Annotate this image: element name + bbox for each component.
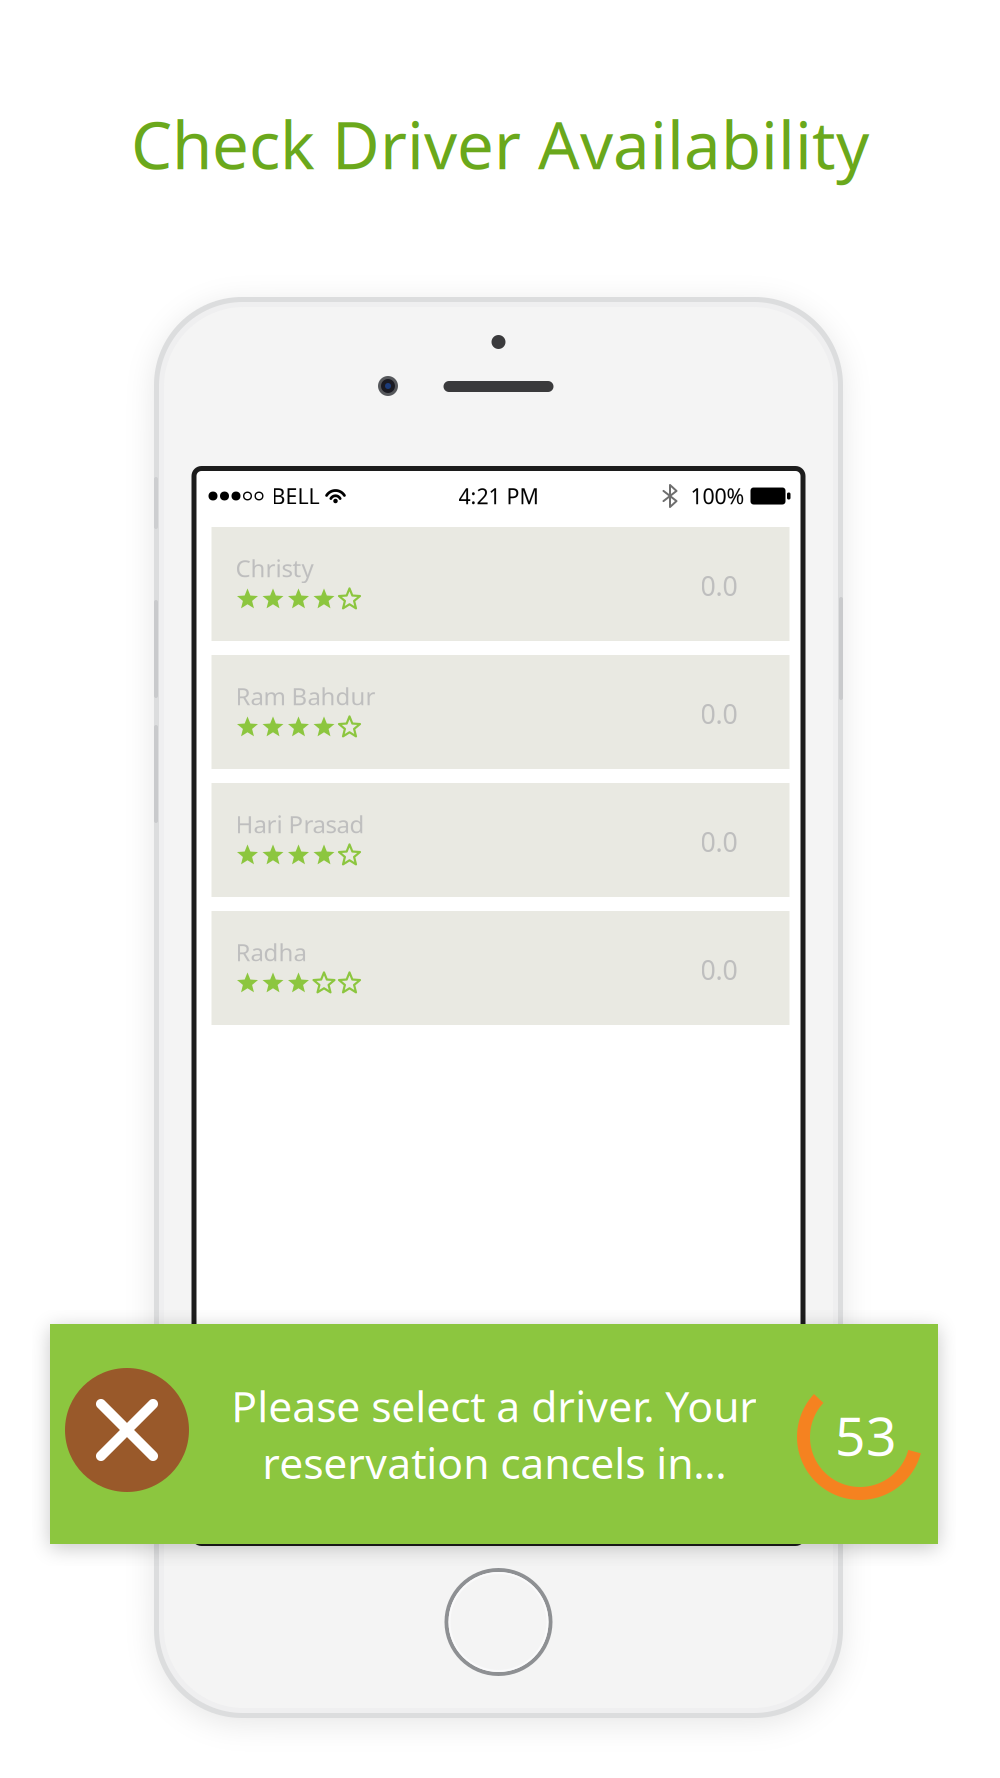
staticText: 0.0 xyxy=(700,568,737,603)
button[interactable]: Hari Prasad xyxy=(209,783,787,897)
staticText: Ram Bahdur xyxy=(235,680,375,712)
staticText: BELL xyxy=(271,482,319,510)
staticText: 0.0 xyxy=(700,696,737,731)
button[interactable]: Ram Bahdur xyxy=(209,655,787,769)
button[interactable]: Dismiss xyxy=(65,1368,189,1492)
staticText: Radha xyxy=(235,936,306,968)
staticText: 53 xyxy=(835,1400,897,1470)
staticText: 0.0 xyxy=(700,824,737,859)
staticText: 100% xyxy=(690,482,744,510)
staticText: 4:21 PM xyxy=(458,482,538,510)
staticText: Christy xyxy=(235,552,313,584)
button[interactable]: Radha xyxy=(209,911,787,1025)
staticText: Check Driver Availability xyxy=(131,101,869,187)
staticText: 0.0 xyxy=(700,952,737,987)
button[interactable]: Christy xyxy=(209,527,787,641)
staticText: Please select a driver. Your reservation… xyxy=(231,1377,757,1491)
staticText: Hari Prasad xyxy=(235,808,364,840)
